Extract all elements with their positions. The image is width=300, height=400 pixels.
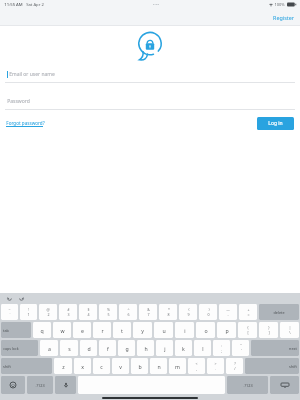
staticText: Sat Apr 2 (26, 2, 44, 8)
staticText: ; (221, 348, 222, 353)
button[interactable]: + (239, 304, 257, 320)
button[interactable]: caps lock (1, 340, 38, 356)
staticText: ] (268, 330, 270, 335)
button[interactable]: delete (259, 304, 299, 320)
button[interactable]: q (33, 322, 51, 338)
staticText: tab (3, 328, 9, 333)
button[interactable]: ) (199, 304, 217, 320)
button[interactable]: Emoji (1, 376, 25, 394)
button[interactable]: Hide keyboard (270, 376, 299, 394)
button[interactable]: v (112, 358, 129, 374)
button[interactable]: Forgot password? (6, 118, 45, 129)
button[interactable]: # (59, 304, 77, 320)
button[interactable]: e (73, 322, 91, 338)
staticText: o (204, 327, 208, 334)
button[interactable]: k (175, 340, 192, 356)
staticText: . (215, 366, 216, 371)
button[interactable]: Password (0, 93, 300, 110)
button[interactable]: c (93, 358, 110, 374)
staticText: h (144, 345, 148, 352)
button[interactable]: — (219, 304, 237, 320)
staticText: * (168, 307, 170, 312)
staticText: m (175, 363, 180, 370)
button[interactable]: | (280, 322, 299, 338)
button[interactable]: < (188, 358, 205, 374)
staticText: } (268, 325, 270, 330)
staticText: b (138, 363, 142, 370)
button[interactable]: i (175, 322, 194, 338)
button[interactable]: h (137, 340, 154, 356)
button[interactable]: & (139, 304, 157, 320)
staticText: k (182, 345, 185, 352)
button[interactable]: next (251, 340, 299, 356)
button[interactable]: Undo (6, 295, 13, 302)
button[interactable]: r (93, 322, 111, 338)
button[interactable]: ~ (1, 304, 18, 320)
button[interactable]: x (74, 358, 91, 374)
staticText: shift (289, 364, 297, 369)
staticText: v (119, 363, 122, 370)
button[interactable]: } (259, 322, 278, 338)
button[interactable]: Redo (18, 295, 25, 302)
button[interactable]: % (99, 304, 117, 320)
button[interactable]: a (40, 340, 58, 356)
button[interactable]: .?123 (227, 376, 268, 394)
staticText: ^ (127, 307, 130, 312)
staticText: : (221, 343, 222, 348)
staticText: \ (289, 330, 291, 335)
button[interactable]: f (99, 340, 116, 356)
staticText: | (289, 325, 291, 330)
button[interactable]: Voice input (55, 376, 76, 394)
button[interactable]: Register (267, 11, 300, 24)
button[interactable]: : (213, 340, 230, 356)
button[interactable]: shift (1, 358, 52, 374)
staticText: w (60, 327, 65, 334)
button[interactable]: l (194, 340, 211, 356)
button[interactable]: s (60, 340, 78, 356)
button[interactable]: Log in (257, 117, 294, 130)
button[interactable]: tab (1, 322, 31, 338)
staticText: Register (273, 14, 294, 21)
button[interactable]: y (133, 322, 152, 338)
button[interactable]: ^ (119, 304, 137, 320)
button[interactable]: m (169, 358, 186, 374)
button[interactable]: b (131, 358, 148, 374)
button[interactable]: $ (79, 304, 97, 320)
button[interactable]: > (207, 358, 224, 374)
button[interactable]: o (196, 322, 215, 338)
button[interactable]: j (156, 340, 173, 356)
button[interactable]: .?123 (27, 376, 53, 394)
staticText: Forgot password? (6, 120, 45, 126)
button[interactable]: ( (179, 304, 197, 320)
staticText: t (121, 327, 123, 334)
button[interactable]: g (118, 340, 135, 356)
button[interactable]: p (217, 322, 236, 338)
button[interactable]: n (150, 358, 167, 374)
button[interactable]: shift (245, 358, 299, 374)
staticText: x (81, 363, 84, 370)
button[interactable]: Email or user name (0, 66, 300, 83)
button[interactable]: u (154, 322, 173, 338)
button[interactable]: * (159, 304, 177, 320)
staticText: 4 (87, 312, 90, 317)
button[interactable]: ? (226, 358, 243, 374)
button[interactable]: w (53, 322, 71, 338)
staticText: Password (7, 98, 30, 105)
button[interactable]: " (232, 340, 249, 356)
button[interactable]: @ (39, 304, 57, 320)
staticText: 100% (274, 2, 285, 7)
button[interactable]: t (113, 322, 131, 338)
button[interactable]: z (54, 358, 72, 374)
staticText: 0 (207, 312, 210, 317)
staticText: 2 (47, 312, 50, 317)
button[interactable]: ! (20, 304, 37, 320)
staticText: [ (247, 330, 249, 335)
staticText: 3 (67, 312, 70, 317)
staticText: > (214, 361, 217, 366)
button[interactable]: { (238, 322, 257, 338)
button[interactable]: d (80, 340, 97, 356)
staticText: Email or user name (9, 71, 55, 78)
staticText: ' (241, 348, 242, 353)
staticText: { (247, 325, 249, 330)
